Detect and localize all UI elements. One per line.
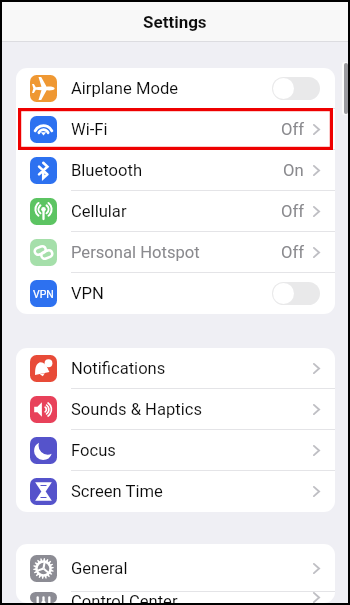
staticText: Focus [71, 441, 116, 460]
button[interactable]: Toggle [272, 77, 320, 100]
staticText: Notifications [71, 359, 166, 378]
staticText: Bluetooth [71, 161, 143, 180]
staticText: Off [281, 243, 304, 262]
button[interactable]: Control Center [16, 592, 335, 603]
staticText: Personal Hotspot [71, 243, 200, 262]
button[interactable]: Personal Hotspot [16, 232, 335, 273]
staticText: VPN [33, 288, 54, 300]
staticText: Off [281, 120, 304, 139]
staticText: On [283, 161, 304, 180]
staticText: Wi-Fi [71, 120, 108, 139]
button[interactable]: Airplane Mode [16, 68, 335, 109]
staticText: Control Center [71, 592, 178, 603]
button[interactable]: Bluetooth [16, 150, 335, 191]
staticText: General [71, 559, 128, 578]
button[interactable]: General [16, 544, 335, 592]
staticText: Settings [143, 12, 207, 32]
staticText: Sounds & Haptics [71, 400, 202, 419]
button[interactable]: Notifications [16, 348, 335, 389]
staticText: Cellular [71, 202, 127, 221]
button[interactable]: Toggle [272, 282, 320, 305]
button[interactable]: Wi-Fi [16, 109, 335, 150]
button[interactable]: Focus [16, 430, 335, 471]
staticText: Screen Time [71, 482, 163, 501]
staticText: Off [281, 202, 304, 221]
staticText: Airplane Mode [71, 79, 179, 98]
button[interactable]: Sounds & Haptics [16, 389, 335, 430]
staticText: VPN [71, 284, 104, 303]
button[interactable]: Screen Time [16, 471, 335, 512]
button[interactable]: Cellular [16, 191, 335, 232]
button[interactable]: VPN [16, 273, 335, 314]
